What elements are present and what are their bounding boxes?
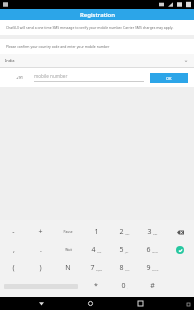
staticText: + [38, 227, 43, 237]
button[interactable]: Back [33, 297, 49, 310]
staticText: 2 [119, 227, 124, 237]
staticText: 9 [146, 263, 151, 273]
button[interactable]: Keyboard [182, 298, 194, 310]
button[interactable]: Pause [54, 223, 82, 241]
staticText: . [40, 245, 42, 255]
button[interactable]: 7 [82, 259, 110, 277]
button[interactable]: ( [0, 259, 27, 277]
button[interactable]: OK [150, 73, 188, 83]
staticText: - [12, 227, 15, 237]
button[interactable]: 2 [110, 223, 138, 241]
button[interactable]: 0 [110, 277, 138, 295]
button[interactable]: * [82, 277, 110, 295]
staticText: N [65, 263, 71, 273]
staticText: PQRS [96, 268, 103, 271]
staticText: Pause [63, 230, 73, 234]
button[interactable]: Wait [54, 241, 82, 259]
staticText: 3 [147, 227, 152, 237]
staticText: +91 [16, 75, 24, 81]
staticText: 0 [121, 281, 126, 291]
staticText: * [94, 281, 98, 291]
button[interactable]: N [54, 259, 82, 277]
staticText: 8 [119, 263, 124, 273]
staticText: ABC [125, 232, 130, 235]
staticText: TUV [125, 268, 130, 271]
button[interactable]: 8 [110, 259, 138, 277]
staticText: 7 [90, 263, 95, 273]
staticText: GHI [97, 250, 102, 253]
staticText: 6 [146, 245, 151, 255]
button[interactable]: - [0, 223, 27, 241]
button[interactable]: + [27, 223, 54, 241]
staticText: Wait [65, 248, 72, 252]
button[interactable]: Enter [166, 241, 194, 259]
button[interactable]: Recents [132, 297, 148, 310]
staticText: 5 [119, 245, 124, 255]
staticText: . [127, 286, 128, 289]
button[interactable]: 1 [82, 223, 110, 241]
button[interactable]: # [138, 277, 166, 295]
button[interactable]: 9 [138, 259, 166, 277]
staticText: JKL [125, 250, 129, 253]
button[interactable]: , [0, 241, 27, 259]
staticText: # [150, 281, 155, 291]
button[interactable]: 6 [138, 241, 166, 259]
staticText: India [5, 58, 15, 63]
staticText: , [13, 245, 15, 255]
staticText: ) [39, 263, 42, 273]
button[interactable]: India [0, 54, 194, 67]
staticText: OK [166, 76, 172, 81]
button[interactable]: ) [27, 259, 54, 277]
staticText: Please confirm your country code and ent… [6, 44, 110, 49]
button[interactable]: Delete [166, 223, 194, 241]
staticText: 1 [94, 227, 99, 237]
button[interactable]: 5 [110, 241, 138, 259]
button[interactable]: . [27, 241, 54, 259]
button[interactable]: 4 [82, 241, 110, 259]
staticText: ( [12, 263, 15, 273]
staticText: WXYZ [152, 268, 159, 271]
button[interactable]: mobile number [34, 72, 144, 83]
staticText: 4 [91, 245, 96, 255]
button[interactable]: 3 [138, 223, 166, 241]
button[interactable]: Home [82, 297, 98, 310]
staticText: mobile number [34, 73, 68, 79]
staticText: ChatSLX will send a one time SMS message… [6, 25, 174, 30]
staticText: DEF [153, 232, 158, 235]
staticText: MNO [152, 250, 158, 253]
staticText: Registration [80, 11, 115, 19]
